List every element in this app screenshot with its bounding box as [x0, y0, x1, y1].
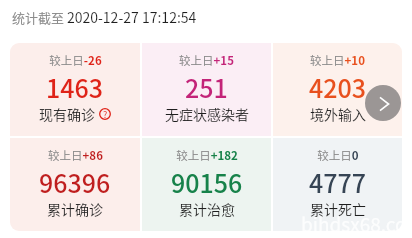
- staticText: 较上日+15: [179, 52, 234, 69]
- staticText: 较上日0: [317, 147, 359, 164]
- button[interactable]: 较上日+86: [10, 138, 140, 231]
- staticText: 90156: [171, 164, 243, 200]
- staticText: bjhdsx68.co: [301, 210, 407, 238]
- button[interactable]: 较上日0: [273, 138, 402, 231]
- staticText: 251: [185, 69, 228, 105]
- staticText: 96396: [39, 164, 111, 200]
- staticText: 无症状感染者: [165, 104, 249, 124]
- staticText: 较上日+10: [310, 52, 365, 69]
- staticText: 累计确诊: [47, 199, 103, 219]
- staticText: 累计治愈: [179, 199, 235, 219]
- button[interactable]: 较上日-26: [10, 43, 140, 136]
- staticText: 1463: [46, 69, 104, 105]
- staticText: 境外输入: [310, 104, 366, 124]
- staticText: 4777: [309, 164, 367, 200]
- button[interactable]: 下一页: [365, 85, 401, 121]
- button[interactable]: 较上日+15: [142, 43, 271, 136]
- staticText: 现有确诊: [39, 104, 95, 124]
- button[interactable]: 较上日+182: [142, 138, 271, 231]
- staticText: 统计截至 2020-12-27 17:12:54: [12, 7, 197, 27]
- staticText: 较上日+86: [48, 147, 103, 164]
- staticText: 累计死亡: [310, 199, 366, 219]
- staticText: 较上日-26: [49, 52, 102, 69]
- staticText: 4203: [309, 69, 367, 105]
- button[interactable]: 较上日+10: [273, 43, 402, 136]
- staticText: ?: [103, 108, 108, 120]
- staticText: 较上日+182: [176, 147, 238, 164]
